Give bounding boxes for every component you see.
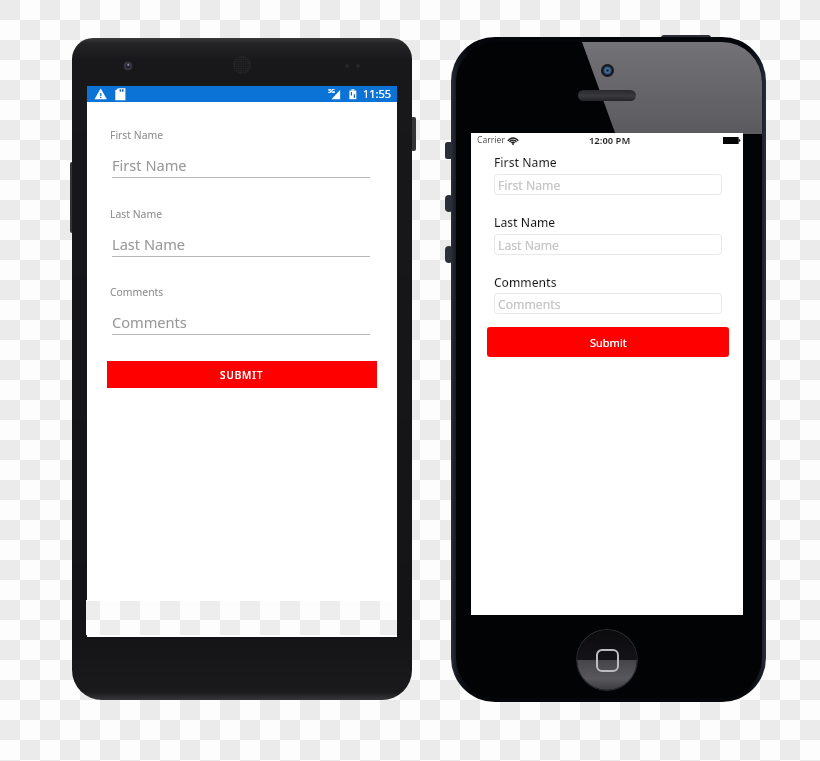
button[interactable]: Home [576, 629, 638, 691]
staticText: Last Name [112, 234, 186, 254]
staticText: Last Name [494, 214, 556, 230]
staticText: Carrier [477, 134, 505, 146]
staticText: Comments [494, 274, 557, 290]
staticText: Submit [590, 335, 627, 350]
staticText: Last Name [498, 237, 559, 254]
staticText: 11:55 [363, 86, 392, 101]
staticText: 12:00 PM [589, 134, 631, 147]
staticText: 3G [328, 87, 335, 94]
staticText: Comments [498, 296, 561, 313]
staticText: First Name [112, 155, 187, 175]
staticText: Comments [112, 312, 187, 332]
staticText: Comments [110, 285, 164, 299]
staticText: SUBMIT [220, 368, 264, 382]
button[interactable]: SUBMIT [107, 361, 377, 388]
staticText: First Name [498, 177, 561, 194]
staticText: First Name [110, 128, 164, 142]
staticText: Last Name [110, 207, 163, 221]
staticText: First Name [494, 154, 557, 170]
button[interactable]: Submit [487, 327, 729, 357]
